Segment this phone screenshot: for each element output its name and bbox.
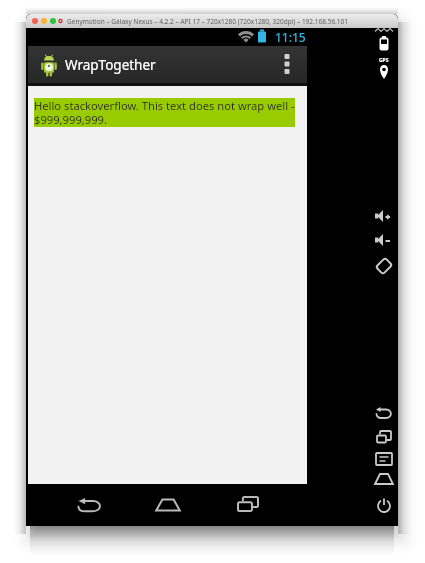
- button[interactable]: [72, 487, 108, 523]
- staticText: WrapTogether: [65, 56, 156, 74]
- button[interactable]: [150, 487, 186, 523]
- button[interactable]: Hello stackoverflow. This text does not …: [34, 98, 295, 127]
- button[interactable]: [229, 487, 265, 523]
- button[interactable]: [267, 46, 307, 83]
- staticText: Genymotion – Galaxy Nexus – 4.2.2 – API …: [67, 17, 349, 26]
- staticText: 11:15: [275, 29, 306, 45]
- staticText: GPS: [379, 57, 389, 64]
